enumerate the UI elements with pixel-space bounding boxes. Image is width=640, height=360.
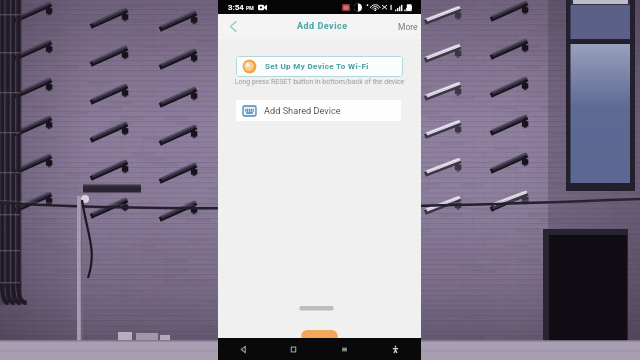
staticText: More xyxy=(398,22,418,32)
button[interactable]: Set Up My Device To Wi-Fi xyxy=(236,56,403,77)
staticText: Add Device xyxy=(297,21,348,32)
staticText: Add Shared Device xyxy=(264,105,341,116)
staticText: Long press RESET button in bottom/back o… xyxy=(218,78,421,86)
button[interactable]: Back xyxy=(218,14,258,39)
button[interactable]: More xyxy=(391,14,421,39)
button[interactable]: Home xyxy=(268,338,319,360)
button[interactable]: Back xyxy=(218,338,268,360)
button[interactable]: Recent apps xyxy=(319,338,370,360)
staticText: 3:54 xyxy=(228,3,244,12)
button[interactable]: Accessibility xyxy=(370,338,421,360)
button[interactable]: Add Shared Device xyxy=(236,100,401,121)
staticText: PM xyxy=(246,5,254,11)
staticText: Set Up My Device To Wi-Fi xyxy=(265,62,369,71)
